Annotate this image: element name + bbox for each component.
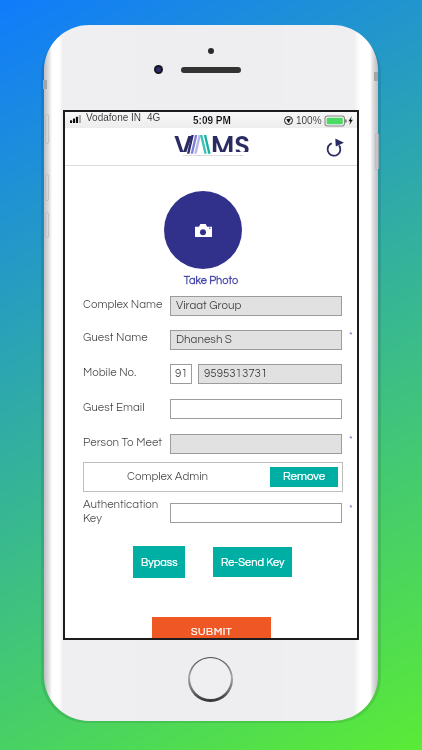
staticText: Authentication Key	[83, 499, 171, 525]
staticText: *	[349, 504, 353, 514]
button[interactable]	[170, 399, 342, 419]
staticText: VISITOR AUTHENTICATION & MANAGEMENT SYST…	[175, 154, 251, 157]
staticText: 100%	[296, 115, 322, 126]
button[interactable]	[170, 434, 342, 454]
staticText: Guest Name	[83, 332, 171, 344]
button[interactable]: Bypass	[133, 546, 185, 578]
staticText: Complex Admin	[127, 471, 209, 483]
staticText: SUBMIT	[191, 626, 233, 637]
button[interactable]: Refresh	[322, 136, 346, 160]
staticText: Dhanesh S	[176, 334, 232, 346]
staticText: Person To Meet	[83, 437, 171, 449]
staticText: Mobile No.	[83, 367, 137, 379]
button[interactable]: SUBMIT	[152, 617, 271, 638]
staticText: 9595313731	[204, 368, 268, 380]
button[interactable]: Dhanesh S	[170, 330, 342, 350]
staticText: Viraat Group	[176, 300, 242, 312]
staticText: Vodafone IN	[86, 112, 142, 123]
staticText: Take Photo	[65, 275, 357, 286]
button[interactable]: 9595313731	[198, 364, 342, 384]
button[interactable]	[170, 503, 342, 523]
staticText: *	[349, 435, 353, 445]
staticText: Bypass	[141, 557, 178, 568]
staticText: Complex Name	[83, 299, 171, 311]
staticText: 4G	[147, 112, 161, 123]
staticText: *	[349, 331, 353, 341]
button[interactable]: Re-Send Key	[213, 547, 292, 577]
staticText: Remove	[283, 471, 326, 483]
staticText: Guest Email	[83, 402, 171, 414]
staticText: 5:09 PM	[193, 115, 231, 126]
button[interactable]: Take Photo	[164, 191, 242, 269]
staticText: V	[174, 128, 193, 152]
button[interactable]: 91	[170, 364, 192, 384]
button[interactable]: Remove	[270, 467, 338, 487]
staticText: 91	[175, 368, 188, 380]
button[interactable]: Viraat Group	[170, 296, 342, 316]
staticText: Re-Send Key	[221, 557, 285, 568]
staticText: MS	[211, 128, 251, 152]
